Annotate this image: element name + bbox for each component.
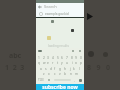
button[interactable]: 1 — [37, 56, 41, 60]
staticText: 1 — [38, 56, 40, 60]
button[interactable]: Enter — [79, 79, 82, 82]
staticText: o — [75, 61, 77, 65]
button[interactable]: 6 — [60, 56, 64, 60]
button[interactable]: ?123 — [38, 78, 44, 82]
staticText: l — [79, 67, 80, 71]
button[interactable]: h — [63, 67, 67, 71]
button[interactable]: b — [63, 72, 67, 76]
staticText: w — [43, 61, 46, 65]
staticText: d — [50, 67, 52, 71]
button[interactable]: m — [74, 72, 78, 76]
staticText: y — [61, 61, 63, 65]
staticText: 6 — [61, 56, 63, 60]
button[interactable]: x — [47, 72, 51, 76]
staticText: k — [73, 67, 75, 71]
button[interactable]: u — [65, 61, 69, 65]
staticText: z — [43, 72, 45, 76]
staticText: 5 — [57, 56, 59, 60]
button[interactable]: a — [39, 67, 43, 71]
staticText: . — [74, 78, 75, 83]
button[interactable]: 9 — [74, 56, 78, 60]
staticText: 3 — [47, 56, 49, 60]
staticText: x — [48, 72, 50, 76]
button[interactable] — [38, 50, 42, 52]
button[interactable]: c — [53, 72, 57, 76]
button[interactable]: 2 — [42, 56, 46, 60]
staticText: e — [47, 61, 49, 65]
button[interactable]: p — [79, 61, 83, 65]
button[interactable]: g — [58, 67, 62, 71]
button[interactable]: j — [68, 67, 72, 71]
staticText: m — [75, 72, 78, 76]
button[interactable]: d — [49, 67, 53, 71]
staticText: p — [80, 61, 82, 65]
other: Back — [38, 5, 42, 9]
button[interactable]: Play — [86, 13, 93, 20]
button[interactable]: w — [42, 61, 46, 65]
button[interactable]: l — [77, 67, 81, 71]
staticText: i — [72, 61, 73, 65]
staticText: j — [70, 67, 71, 71]
staticText: abc — [9, 51, 22, 61]
button[interactable]: r — [51, 61, 55, 65]
button[interactable]: o — [74, 61, 78, 65]
staticText: 8 9 0 — [87, 63, 110, 73]
staticText: 9 — [75, 56, 77, 60]
staticText: b — [64, 72, 66, 76]
staticText: 2 — [43, 56, 45, 60]
button[interactable]: 5 — [56, 56, 60, 60]
button[interactable]: k — [72, 67, 76, 71]
staticText: h — [64, 67, 66, 71]
staticText: u — [66, 61, 68, 65]
staticText: 4 — [52, 56, 54, 60]
button[interactable]: t — [56, 61, 60, 65]
staticText: q — [38, 61, 40, 65]
button[interactable]: e — [46, 61, 50, 65]
button[interactable]: Like — [88, 51, 94, 57]
staticText: 7 — [66, 56, 68, 60]
button[interactable]: s — [44, 67, 48, 71]
button[interactable]: . — [74, 78, 75, 83]
staticText: 0 — [80, 56, 82, 60]
button[interactable]: 0 — [79, 56, 83, 60]
button[interactable]: y — [60, 61, 64, 65]
button[interactable]: 3 — [46, 56, 50, 60]
button[interactable]: i — [70, 61, 74, 65]
staticText: 8 — [71, 56, 73, 60]
button[interactable]: 4 — [51, 56, 55, 60]
button[interactable]: example.gov.kid — [36, 10, 84, 17]
button[interactable]: subscribe now — [36, 84, 84, 90]
button[interactable]: 7 — [65, 56, 69, 60]
staticText: subscribe now — [42, 84, 78, 90]
staticText: loading results — [48, 44, 69, 48]
button[interactable]: n — [69, 72, 73, 76]
staticText: a — [40, 67, 42, 71]
staticText: Search — [44, 4, 57, 9]
staticText: c — [54, 72, 56, 76]
staticText: 1 2 3 — [5, 63, 25, 73]
button[interactable]: Back — [36, 3, 84, 10]
button[interactable]: z — [42, 72, 46, 76]
staticText: n — [70, 72, 72, 76]
staticText: r — [52, 61, 54, 65]
staticText: ?123 — [38, 78, 44, 82]
button[interactable]: q — [37, 61, 41, 65]
button[interactable]: 8 — [70, 56, 74, 60]
staticText: t — [57, 61, 59, 65]
button[interactable]: Share — [103, 52, 108, 57]
button[interactable]: v — [58, 72, 62, 76]
staticText: example.gov.kid — [45, 12, 69, 16]
staticText: v — [59, 72, 61, 76]
staticText: s — [45, 67, 47, 71]
staticText: f — [54, 67, 56, 71]
staticText: g — [59, 67, 61, 71]
button[interactable]: f — [53, 67, 57, 71]
